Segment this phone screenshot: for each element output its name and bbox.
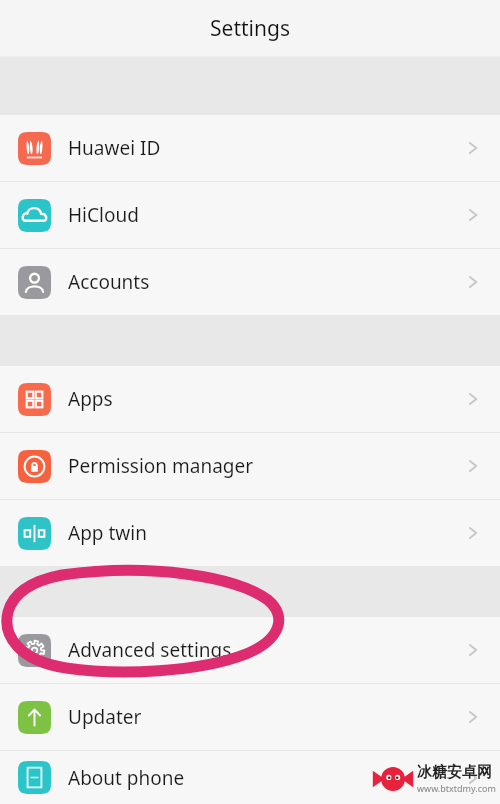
staticText: 冰糖安卓网 — [417, 763, 492, 782]
staticText: App twin — [68, 520, 147, 546]
staticText: Accounts — [68, 269, 150, 295]
button[interactable]: Huawei ID — [0, 115, 500, 181]
staticText: About phone — [68, 765, 185, 791]
staticText: www.btxtdmy.com — [417, 782, 496, 794]
staticText: HiCloud — [68, 202, 139, 228]
button[interactable]: Apps — [0, 366, 500, 432]
button[interactable]: App twin — [0, 500, 500, 566]
staticText: Updater — [68, 704, 142, 730]
staticText: Permission manager — [68, 453, 254, 479]
button[interactable]: Permission manager — [0, 433, 500, 499]
button[interactable]: Advanced settings — [0, 617, 500, 683]
button[interactable]: Accounts — [0, 249, 500, 315]
staticText: Huawei ID — [68, 135, 161, 161]
staticText: Apps — [68, 386, 113, 412]
button[interactable]: HiCloud — [0, 182, 500, 248]
staticText: Advanced settings — [68, 637, 232, 663]
staticText: Settings — [210, 14, 290, 43]
button[interactable]: Updater — [0, 684, 500, 750]
button[interactable]: About phone — [0, 751, 500, 804]
